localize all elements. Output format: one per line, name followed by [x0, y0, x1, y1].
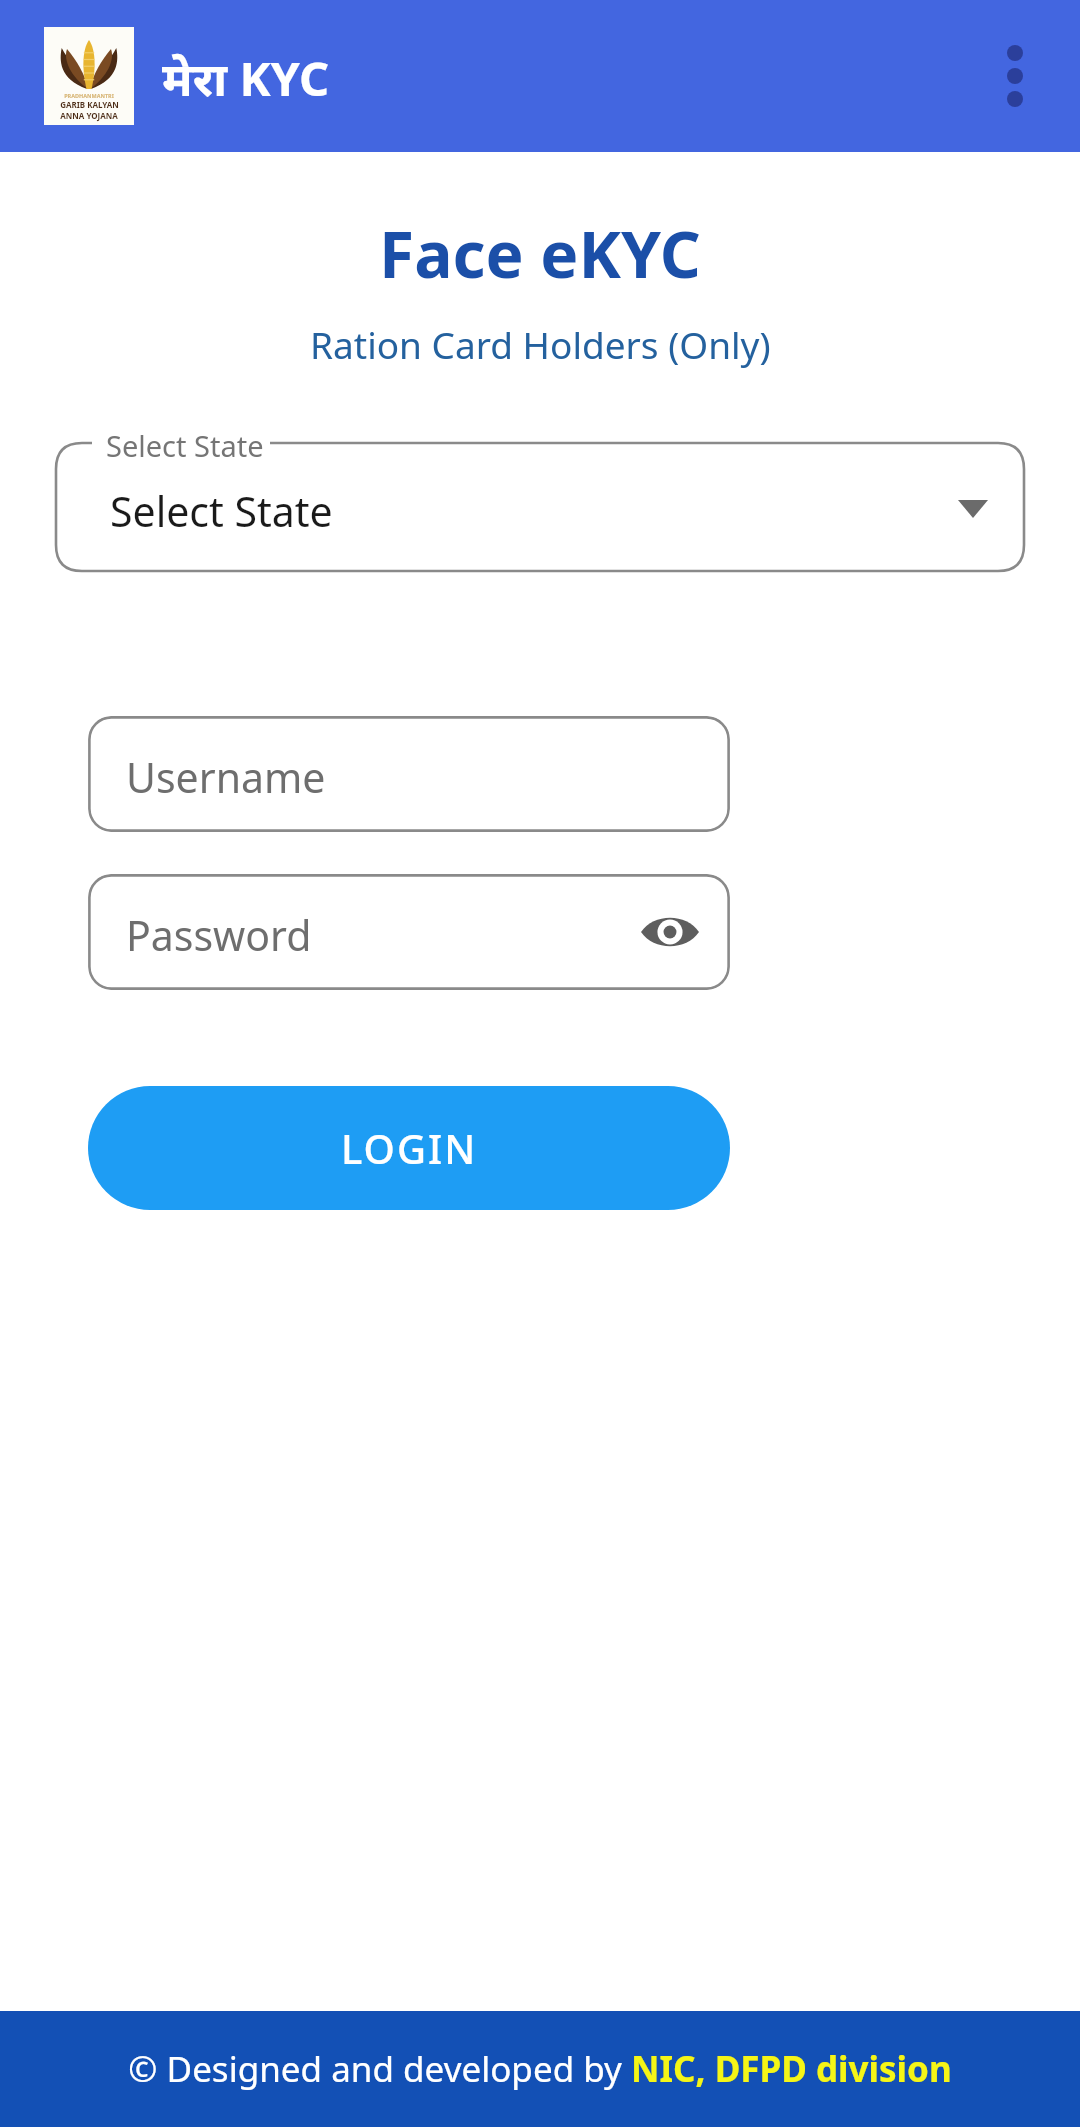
- button[interactable]: Username: [88, 716, 730, 832]
- staticText: ANNA YOJANA: [60, 110, 118, 121]
- staticText: Select State: [106, 426, 264, 465]
- button[interactable]: LOGIN: [88, 1086, 730, 1210]
- staticText: © Designed and developed by NIC, DFPD di…: [128, 2045, 952, 2093]
- button[interactable]: More options: [976, 37, 1054, 115]
- button[interactable]: Show password: [632, 894, 708, 970]
- staticText: मेरा KYC: [162, 46, 330, 110]
- staticText: GARIB KALYAN: [60, 99, 119, 110]
- staticText: PRADHANMANTRI: [64, 92, 114, 99]
- button[interactable]: Select State dropdown: [56, 443, 1024, 571]
- button[interactable]: Password: [88, 874, 730, 990]
- staticText: Username: [126, 749, 326, 805]
- staticText: Face eKYC: [379, 210, 701, 297]
- staticText: Ration Card Holders (Only): [310, 319, 771, 369]
- staticText: Password: [126, 907, 312, 963]
- staticText: LOGIN: [341, 1121, 478, 1175]
- staticText: Select State: [110, 483, 333, 539]
